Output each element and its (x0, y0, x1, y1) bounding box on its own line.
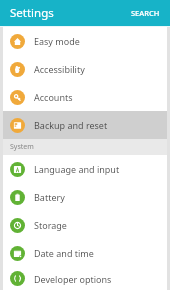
button[interactable]: Backup and reset (3, 111, 167, 139)
other: Developer options (10, 271, 25, 286)
staticText: SEARCH (131, 8, 160, 18)
button[interactable]: Easy mode (3, 27, 167, 55)
other: Accounts (10, 90, 25, 105)
staticText: Date and time (34, 247, 94, 259)
staticText: Accounts (34, 91, 73, 103)
button[interactable]: Developer options (3, 267, 167, 290)
staticText: Easy mode (34, 35, 80, 47)
other: Battery (10, 190, 25, 205)
staticText: Battery (34, 191, 65, 203)
button[interactable]: Battery (3, 183, 167, 211)
other: Storage (10, 218, 25, 233)
other: Accessibility (10, 62, 25, 77)
staticText: System (10, 142, 34, 152)
other: Easy mode (10, 34, 25, 49)
button[interactable]: Date and time (3, 239, 167, 267)
button[interactable]: Language and input (3, 155, 167, 183)
staticText: Developer options (34, 273, 112, 285)
button[interactable]: Accessibility (3, 55, 167, 83)
other: Backup and reset (10, 118, 25, 133)
staticText: Accessibility (34, 63, 85, 75)
button[interactable]: SEARCH (129, 5, 162, 21)
other: Date and time (10, 246, 25, 261)
other: Language and input (10, 162, 25, 177)
staticText: Backup and reset (34, 119, 108, 131)
staticText: Storage (34, 219, 67, 231)
button[interactable]: Accounts (3, 83, 167, 111)
staticText: Settings (10, 5, 54, 21)
staticText: Language and input (34, 163, 120, 175)
button[interactable]: Storage (3, 211, 167, 239)
